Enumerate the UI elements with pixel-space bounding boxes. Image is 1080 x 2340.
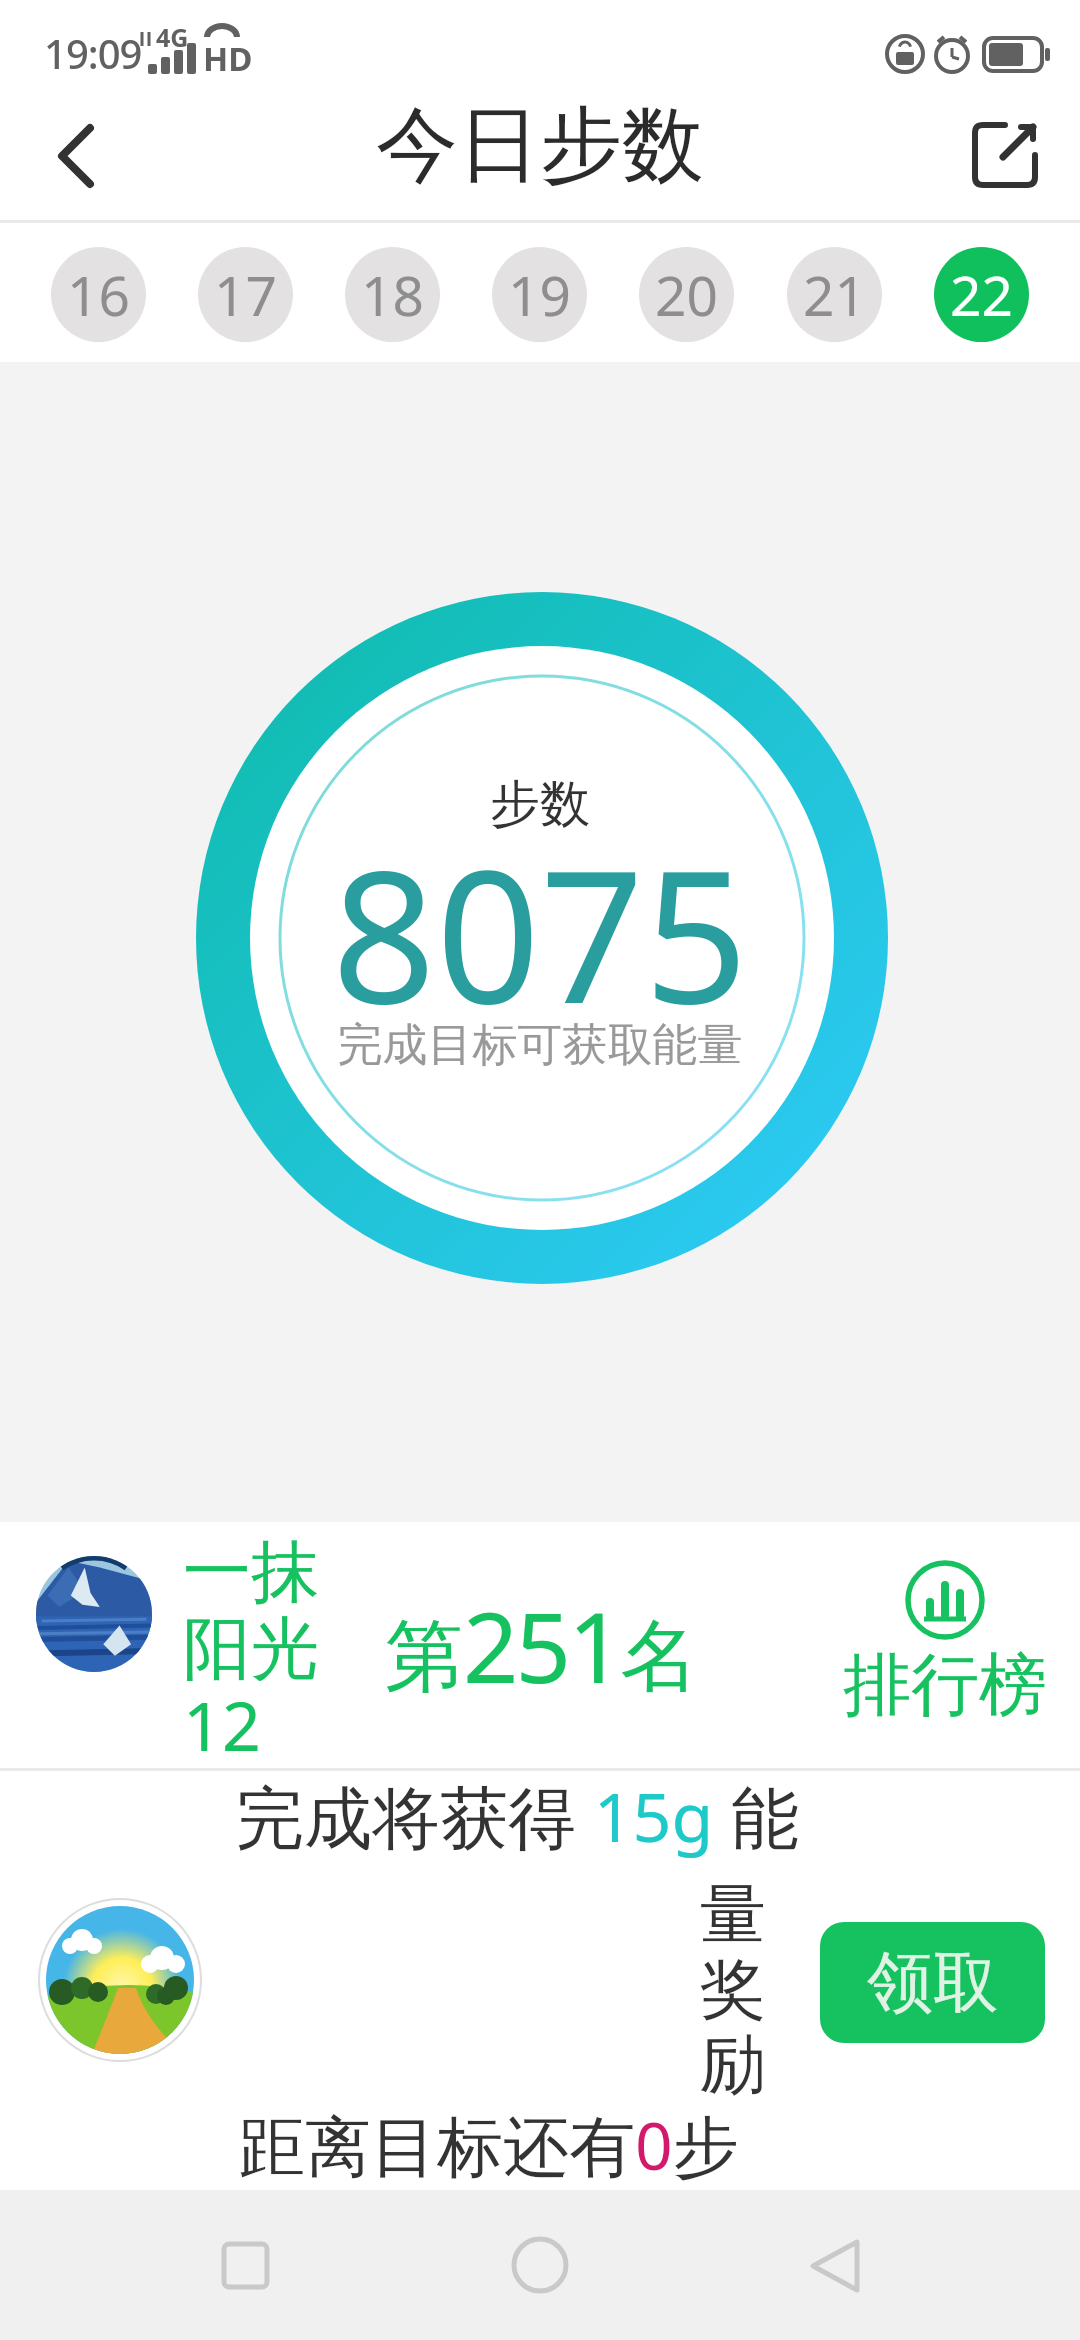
button[interactable]: 18 — [345, 247, 440, 342]
staticText: 21 — [803, 257, 866, 332]
staticText: 19 — [508, 257, 571, 332]
button[interactable]: 20 — [639, 247, 734, 342]
staticText: 领取 — [867, 1941, 999, 2024]
button[interactable]: 排行榜 — [835, 1542, 1055, 1742]
staticText: 20 — [655, 257, 718, 332]
staticText: 一抹 阳光 12 — [183, 1530, 319, 1771]
button[interactable] — [30, 110, 120, 200]
staticText: 排行榜 — [835, 1643, 1055, 1729]
button[interactable] — [795, 2225, 875, 2305]
button[interactable]: 一抹 阳光 12 — [0, 1522, 1080, 1768]
staticText: 17 — [214, 257, 277, 332]
staticText: 18 — [361, 257, 424, 332]
button[interactable] — [206, 2225, 286, 2305]
button[interactable]: 21 — [787, 247, 882, 342]
button[interactable] — [955, 105, 1055, 205]
staticText: HD — [203, 36, 253, 81]
staticText: 16 — [67, 257, 130, 332]
staticText: 完成目标可获取能量 — [0, 1017, 1080, 1074]
button[interactable]: 19 — [492, 247, 587, 342]
button[interactable] — [500, 2225, 580, 2305]
staticText: 今日步数 — [0, 94, 1080, 197]
button[interactable]: 领取 — [820, 1922, 1045, 2043]
staticText: 步数 — [0, 773, 1080, 836]
staticText: 8075 — [0, 808, 1080, 1056]
staticText: 距离目标还有0步 — [239, 2099, 739, 2189]
button[interactable]: 17 — [198, 247, 293, 342]
button[interactable]: 16 — [51, 247, 146, 342]
staticText: 完成将获得 15g 能 — [236, 1769, 799, 1862]
staticText: 4G — [156, 20, 189, 54]
staticText: 19:09 — [44, 26, 142, 80]
button[interactable]: 22 — [934, 247, 1029, 342]
staticText: 量 奖 励 — [700, 1873, 766, 2107]
staticText: 第251名 — [385, 1579, 699, 1711]
staticText: 22 — [950, 257, 1013, 332]
